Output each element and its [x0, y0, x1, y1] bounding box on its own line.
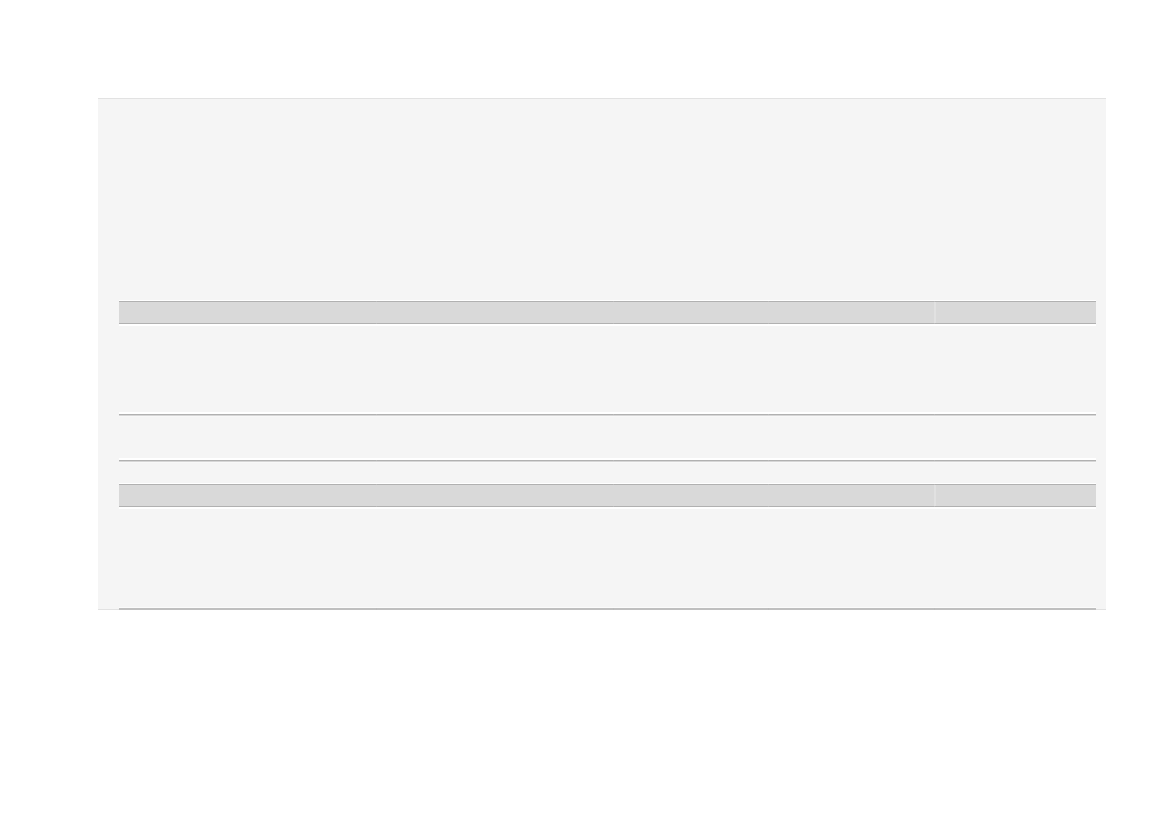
button[interactable]: Second section header — [119, 483, 1096, 509]
button[interactable] — [119, 458, 1096, 463]
button[interactable] — [119, 412, 1096, 417]
button[interactable]: Section header — [119, 300, 1096, 326]
